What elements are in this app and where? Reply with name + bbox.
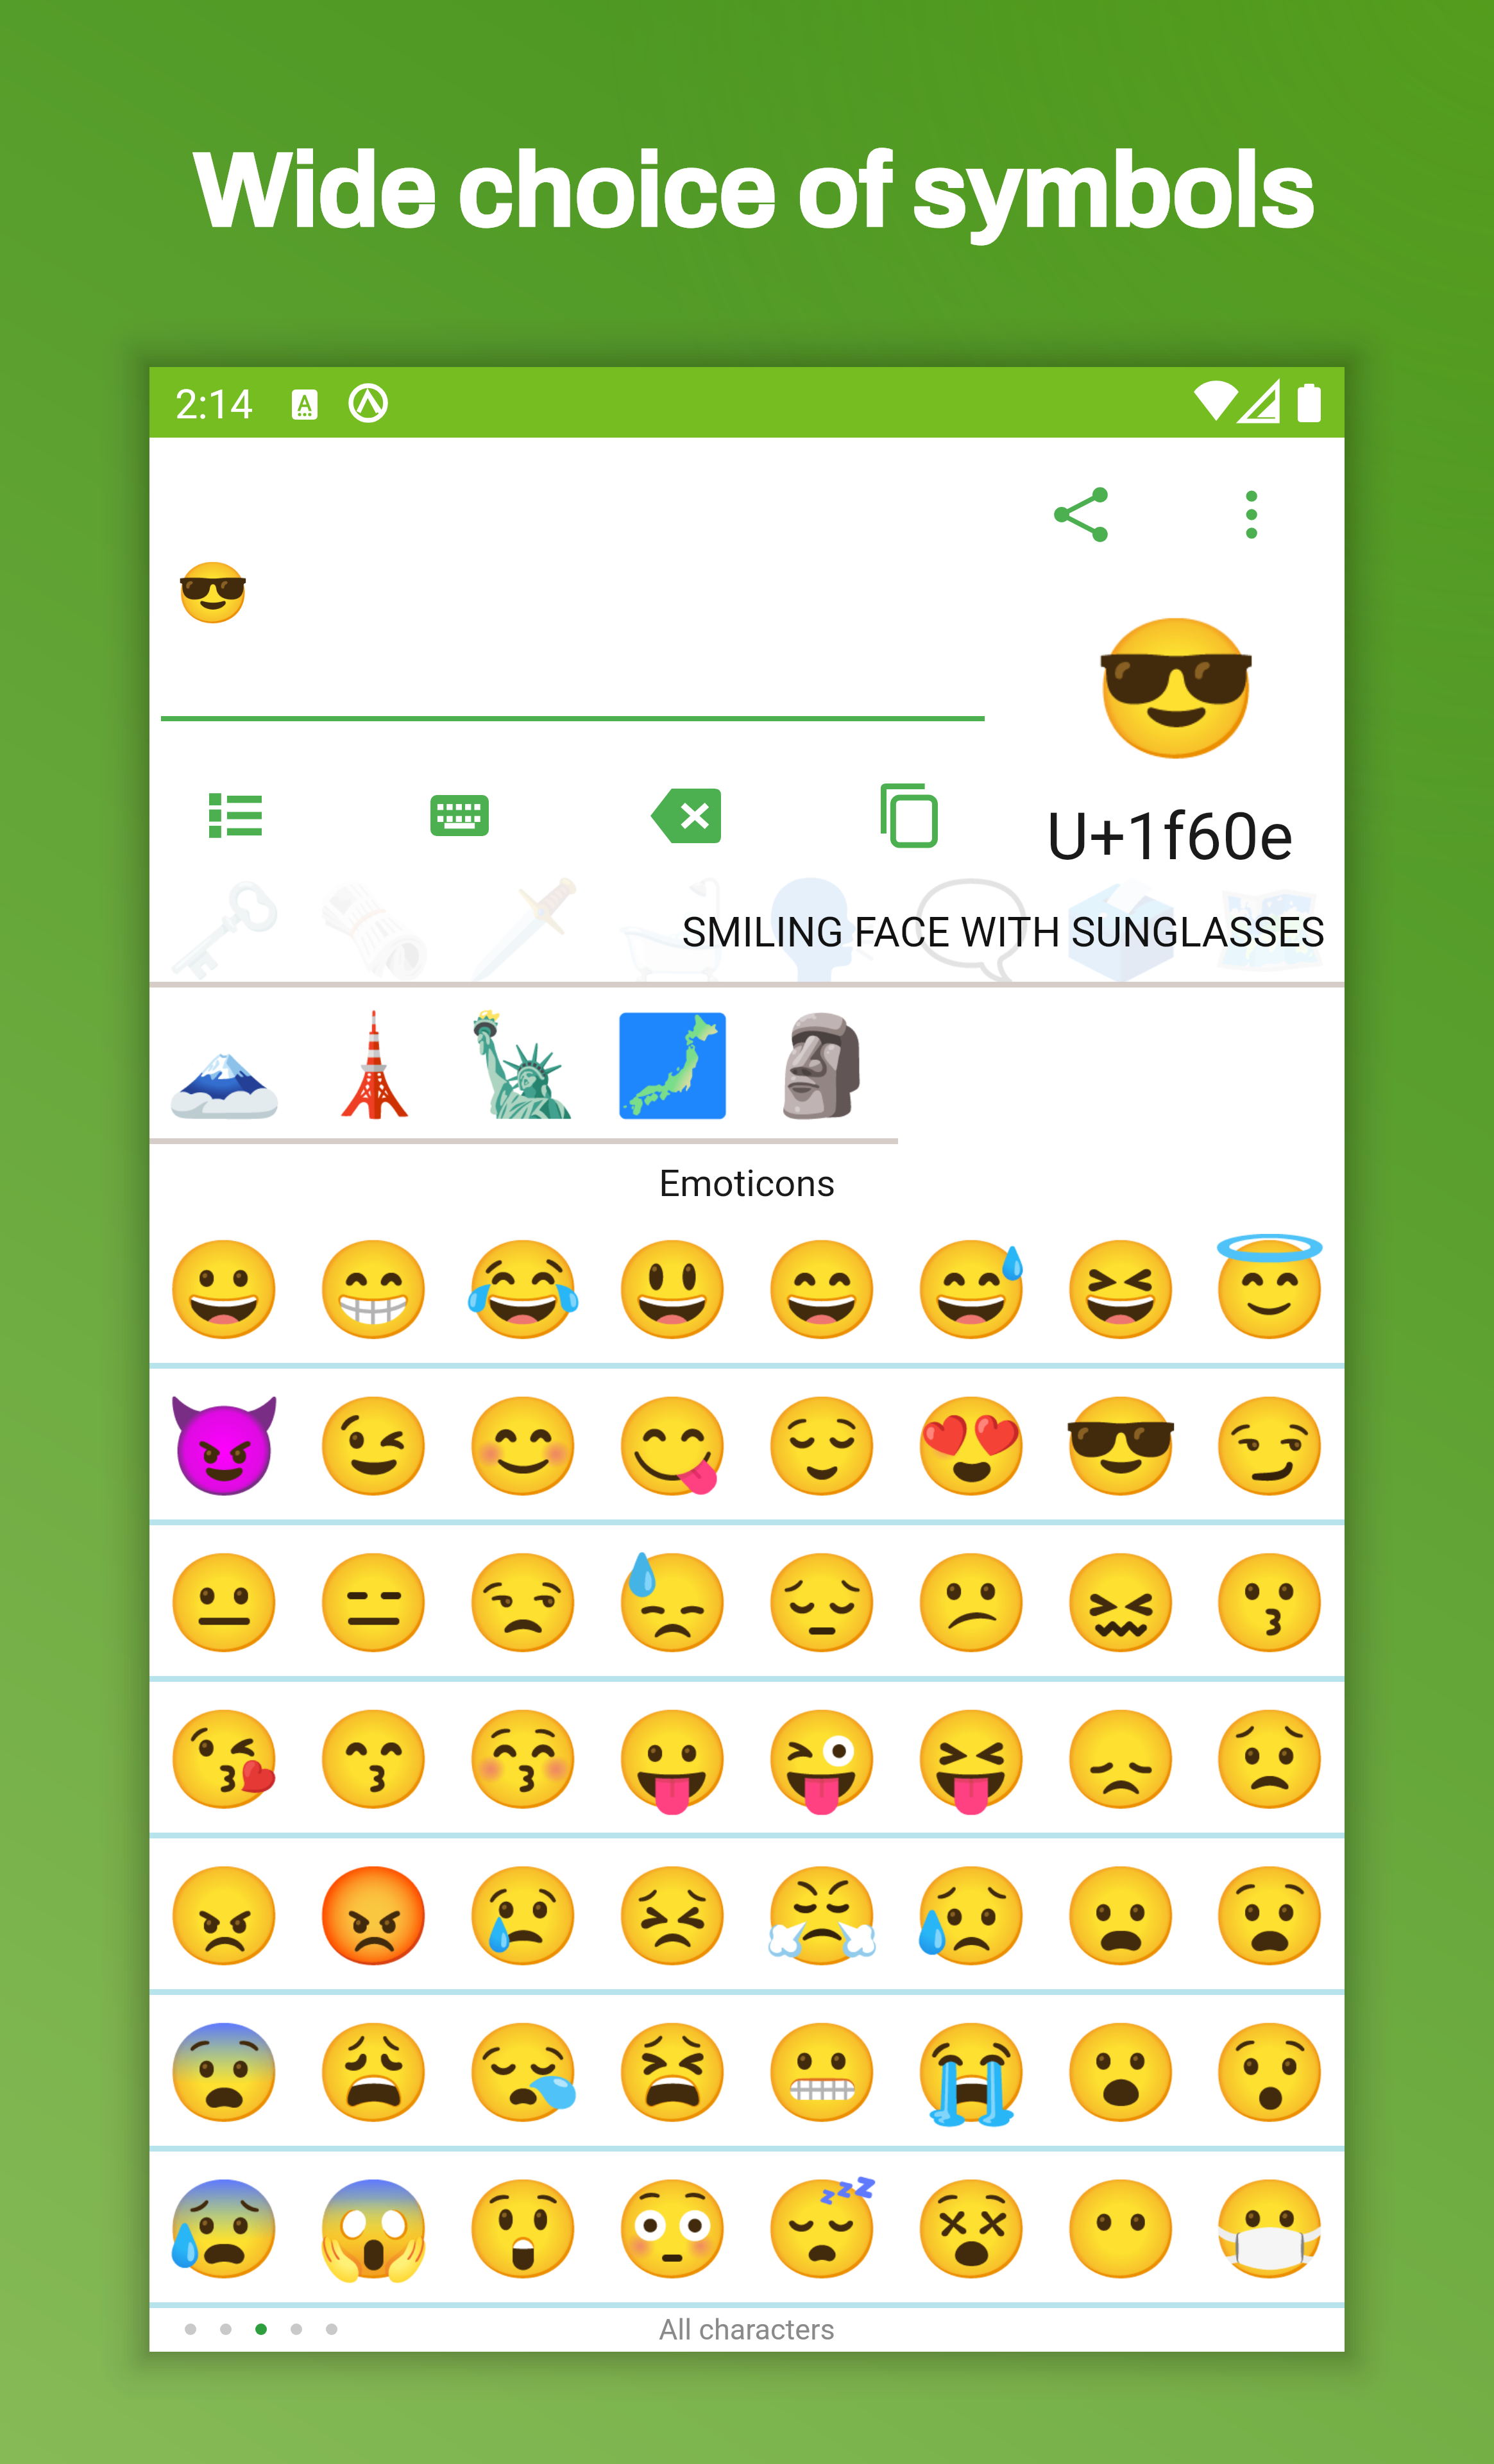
staticText: All characters [659,2313,835,2347]
button[interactable]: 😶 [1046,2152,1196,2308]
staticText: 😌 [762,1390,883,1503]
button[interactable]: 😙 [299,1682,448,1838]
staticText: 😏 [1210,1390,1330,1503]
button[interactable]: Symbol [747,874,897,982]
button[interactable]: More options [1214,476,1291,553]
button[interactable]: Symbol [299,874,448,982]
button[interactable]: Symbol [1046,874,1196,982]
button[interactable]: 😪 [448,1995,598,2152]
button[interactable]: 😐 [149,1525,299,1682]
button[interactable]: Copy [864,771,954,860]
button[interactable]: Landmark symbol [747,993,897,1139]
button[interactable]: 😳 [598,2152,747,2308]
button[interactable]: 😬 [747,1995,897,2152]
button[interactable]: 😧 [1196,1838,1345,1995]
button[interactable]: 😀 [149,1212,299,1369]
staticText: 😶 [1061,2173,1182,2286]
staticText: 😵 [912,2173,1032,2286]
staticText: 😄 [762,1234,883,1347]
button[interactable]: Bulleted list [191,771,280,860]
button[interactable]: 😇 [1196,1212,1345,1369]
button[interactable]: Text field [161,450,985,721]
button[interactable]: Symbol [897,874,1046,982]
button[interactable]: 😘 [149,1682,299,1838]
button[interactable]: 😩 [299,1995,448,2152]
button[interactable]: 😢 [448,1838,598,1995]
button[interactable]: 😴 [747,2152,897,2308]
staticText: 😈 [164,1390,285,1503]
staticText: 😰 [164,2173,285,2286]
button[interactable]: 😭 [897,1995,1046,2152]
button[interactable]: 😑 [299,1525,448,1682]
button[interactable]: 😁 [299,1212,448,1369]
staticText: Wide choice of symbols [8,135,1494,247]
staticText: 🗻 [164,1009,285,1122]
staticText: 😆 [1061,1234,1182,1347]
button[interactable]: Landmark symbol [149,993,299,1139]
button[interactable]: 😠 [149,1838,299,1995]
button[interactable]: 😜 [747,1682,897,1838]
button[interactable]: 😤 [747,1838,897,1995]
button[interactable]: 😅 [897,1212,1046,1369]
button[interactable]: 😦 [1046,1838,1196,1995]
button[interactable]: 😫 [598,1995,747,2152]
button[interactable]: 😂 [448,1212,598,1369]
button[interactable]: 😊 [448,1369,598,1525]
button[interactable]: 😚 [448,1682,598,1838]
button[interactable]: 😖 [1046,1525,1196,1682]
staticText: 😓 [613,1547,733,1660]
button[interactable]: 😆 [1046,1212,1196,1369]
button[interactable]: Symbol [598,874,747,982]
button[interactable]: 😎 [1046,1369,1196,1525]
button[interactable]: Landmark symbol [598,993,747,1139]
staticText: 😎 [176,558,251,628]
button[interactable]: 😮 [1046,1995,1196,2152]
button[interactable]: 😱 [299,2152,448,2308]
button[interactable]: 😯 [1196,1995,1345,2152]
button[interactable]: 😥 [897,1838,1046,1995]
staticText: 😳 [613,2173,733,2286]
staticText: 😧 [1210,1860,1330,1973]
button[interactable]: Share [1042,476,1119,553]
button[interactable]: 😗 [1196,1525,1345,1682]
button[interactable]: Symbol [149,874,299,982]
button[interactable]: Landmark symbol [299,993,448,1139]
button[interactable]: Selected character preview [1073,598,1253,829]
staticText: 😭 [912,2017,1032,2130]
button[interactable]: 😏 [1196,1369,1345,1525]
button[interactable]: 😲 [448,2152,598,2308]
button[interactable]: 😋 [598,1369,747,1525]
button[interactable]: 😕 [897,1525,1046,1682]
button[interactable]: 😃 [598,1212,747,1369]
button[interactable]: 😷 [1196,2152,1345,2308]
button[interactable]: 😉 [299,1369,448,1525]
button[interactable]: 😔 [747,1525,897,1682]
staticText: 😑 [314,1547,434,1660]
button[interactable]: 😨 [149,1995,299,2152]
button[interactable]: 😣 [598,1838,747,1995]
button[interactable]: 😞 [1046,1682,1196,1838]
button[interactable]: Keyboard [414,771,504,860]
staticText: 😟 [1210,1704,1330,1817]
staticText: 😀 [164,1234,285,1347]
button[interactable]: 😝 [897,1682,1046,1838]
button[interactable]: Landmark symbol [448,993,598,1139]
staticText: 😘 [164,1704,285,1817]
button[interactable]: 😛 [598,1682,747,1838]
button[interactable]: Page indicator [149,2303,1345,2352]
button[interactable]: 😓 [598,1525,747,1682]
button[interactable]: 😟 [1196,1682,1345,1838]
button[interactable]: Backspace [641,771,731,860]
button[interactable]: 😈 [149,1369,299,1525]
button[interactable]: Symbol [448,874,598,982]
button[interactable]: 😰 [149,2152,299,2308]
button[interactable]: 😒 [448,1525,598,1682]
staticText: 🗞 [314,874,434,982]
button[interactable]: 😍 [897,1369,1046,1525]
button[interactable]: 😵 [897,2152,1046,2308]
button[interactable]: 😌 [747,1369,897,1525]
staticText: 😡 [314,1860,434,1973]
button[interactable]: 😄 [747,1212,897,1369]
button[interactable]: Symbol [1196,874,1345,982]
button[interactable]: 😡 [299,1838,448,1995]
